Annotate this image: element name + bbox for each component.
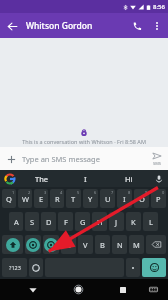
- button[interactable]: Google search: [0, 170, 20, 187]
- staticText: U: [105, 194, 111, 204]
- button[interactable]: M: [129, 235, 144, 254]
- staticText: 9: [145, 190, 148, 195]
- staticText: ?123: [9, 264, 21, 271]
- button[interactable]: P: [151, 189, 166, 208]
- button[interactable]: R: [50, 189, 64, 208]
- staticText: J: [115, 217, 118, 227]
- staticText: This is a conversation with Whitson · Fr…: [22, 138, 146, 145]
- button[interactable]: More options: [148, 17, 166, 35]
- staticText: I: [84, 174, 87, 184]
- staticText: B: [100, 240, 105, 250]
- button[interactable]: Y: [83, 189, 98, 208]
- button[interactable]: X: [43, 235, 59, 254]
- button[interactable]: Q: [2, 189, 16, 208]
- staticText: F: [64, 217, 68, 227]
- staticText: E: [39, 194, 44, 204]
- button[interactable]: Type an SMS message: [22, 147, 146, 170]
- button[interactable]: S: [25, 212, 39, 231]
- button[interactable]: B: [95, 235, 110, 254]
- button[interactable]: The: [20, 170, 64, 187]
- staticText: G: [80, 217, 86, 227]
- staticText: R: [55, 194, 60, 204]
- staticText: Whitson Gordon: [26, 20, 93, 32]
- button[interactable]: D: [41, 212, 56, 231]
- staticText: SMS: [153, 161, 162, 166]
- button[interactable]: F: [58, 212, 73, 231]
- button[interactable]: Emoji: [142, 258, 166, 277]
- button[interactable]: Call: [126, 15, 148, 37]
- button[interactable]: A: [9, 212, 23, 231]
- staticText: V: [83, 240, 88, 250]
- staticText: Y: [88, 194, 93, 204]
- button[interactable]: O: [134, 189, 149, 208]
- staticText: 8: [128, 190, 131, 195]
- staticText: D: [46, 217, 52, 227]
- button[interactable]: Settings: [29, 258, 43, 277]
- staticText: Q: [6, 194, 12, 204]
- button[interactable]: Voice input: [150, 170, 168, 187]
- staticText: P: [156, 194, 161, 204]
- button[interactable]: G: [75, 212, 90, 231]
- button[interactable]: W: [18, 189, 32, 208]
- staticText: L: [149, 217, 153, 227]
- staticText: O: [139, 194, 145, 204]
- button[interactable]: Hi: [107, 170, 150, 187]
- staticText: H: [97, 217, 103, 227]
- staticText: I: [123, 194, 126, 204]
- staticText: 3: [44, 190, 47, 195]
- button[interactable]: Period: [126, 258, 140, 277]
- button[interactable]: Switch keyboard: [138, 279, 168, 300]
- button[interactable]: T: [66, 189, 81, 208]
- button[interactable]: Home: [63, 279, 93, 300]
- staticText: C: [66, 240, 71, 250]
- button[interactable]: I: [64, 170, 107, 187]
- staticText: 7: [111, 190, 114, 195]
- staticText: T: [71, 194, 76, 204]
- staticText: W: [22, 194, 29, 204]
- staticText: Hi: [125, 174, 133, 184]
- button[interactable]: Symbols: [2, 258, 27, 277]
- button[interactable]: K: [126, 212, 141, 231]
- button[interactable]: H: [92, 212, 107, 231]
- button[interactable]: V: [78, 235, 93, 254]
- button[interactable]: Recents: [108, 279, 138, 300]
- button[interactable]: Z: [25, 235, 41, 254]
- staticText: A: [14, 217, 19, 227]
- button[interactable]: E: [34, 189, 48, 208]
- button[interactable]: L: [143, 212, 158, 231]
- staticText: 5: [77, 190, 80, 195]
- button[interactable]: Shift: [2, 235, 23, 254]
- button[interactable]: Attach: [0, 148, 22, 170]
- staticText: N: [117, 240, 123, 250]
- staticText: M: [133, 240, 140, 250]
- staticText: 2: [28, 190, 31, 195]
- button[interactable]: C: [61, 235, 76, 254]
- staticText: The: [35, 174, 49, 184]
- button[interactable]: U: [100, 189, 115, 208]
- button[interactable]: Back: [0, 14, 24, 38]
- staticText: 4: [60, 190, 63, 195]
- staticText: 0: [162, 190, 165, 195]
- button[interactable]: N: [112, 235, 127, 254]
- button[interactable]: Hide keyboard: [18, 279, 48, 300]
- button[interactable]: Send SMS: [146, 147, 168, 170]
- staticText: 8:56: [153, 3, 165, 11]
- button[interactable]: Delete: [146, 235, 166, 254]
- staticText: K: [131, 217, 136, 227]
- staticText: 1: [12, 190, 15, 195]
- staticText: S: [30, 217, 35, 227]
- button[interactable]: J: [109, 212, 124, 231]
- button[interactable]: I: [117, 189, 132, 208]
- staticText: Type an SMS message: [22, 154, 100, 164]
- staticText: 6: [94, 190, 97, 195]
